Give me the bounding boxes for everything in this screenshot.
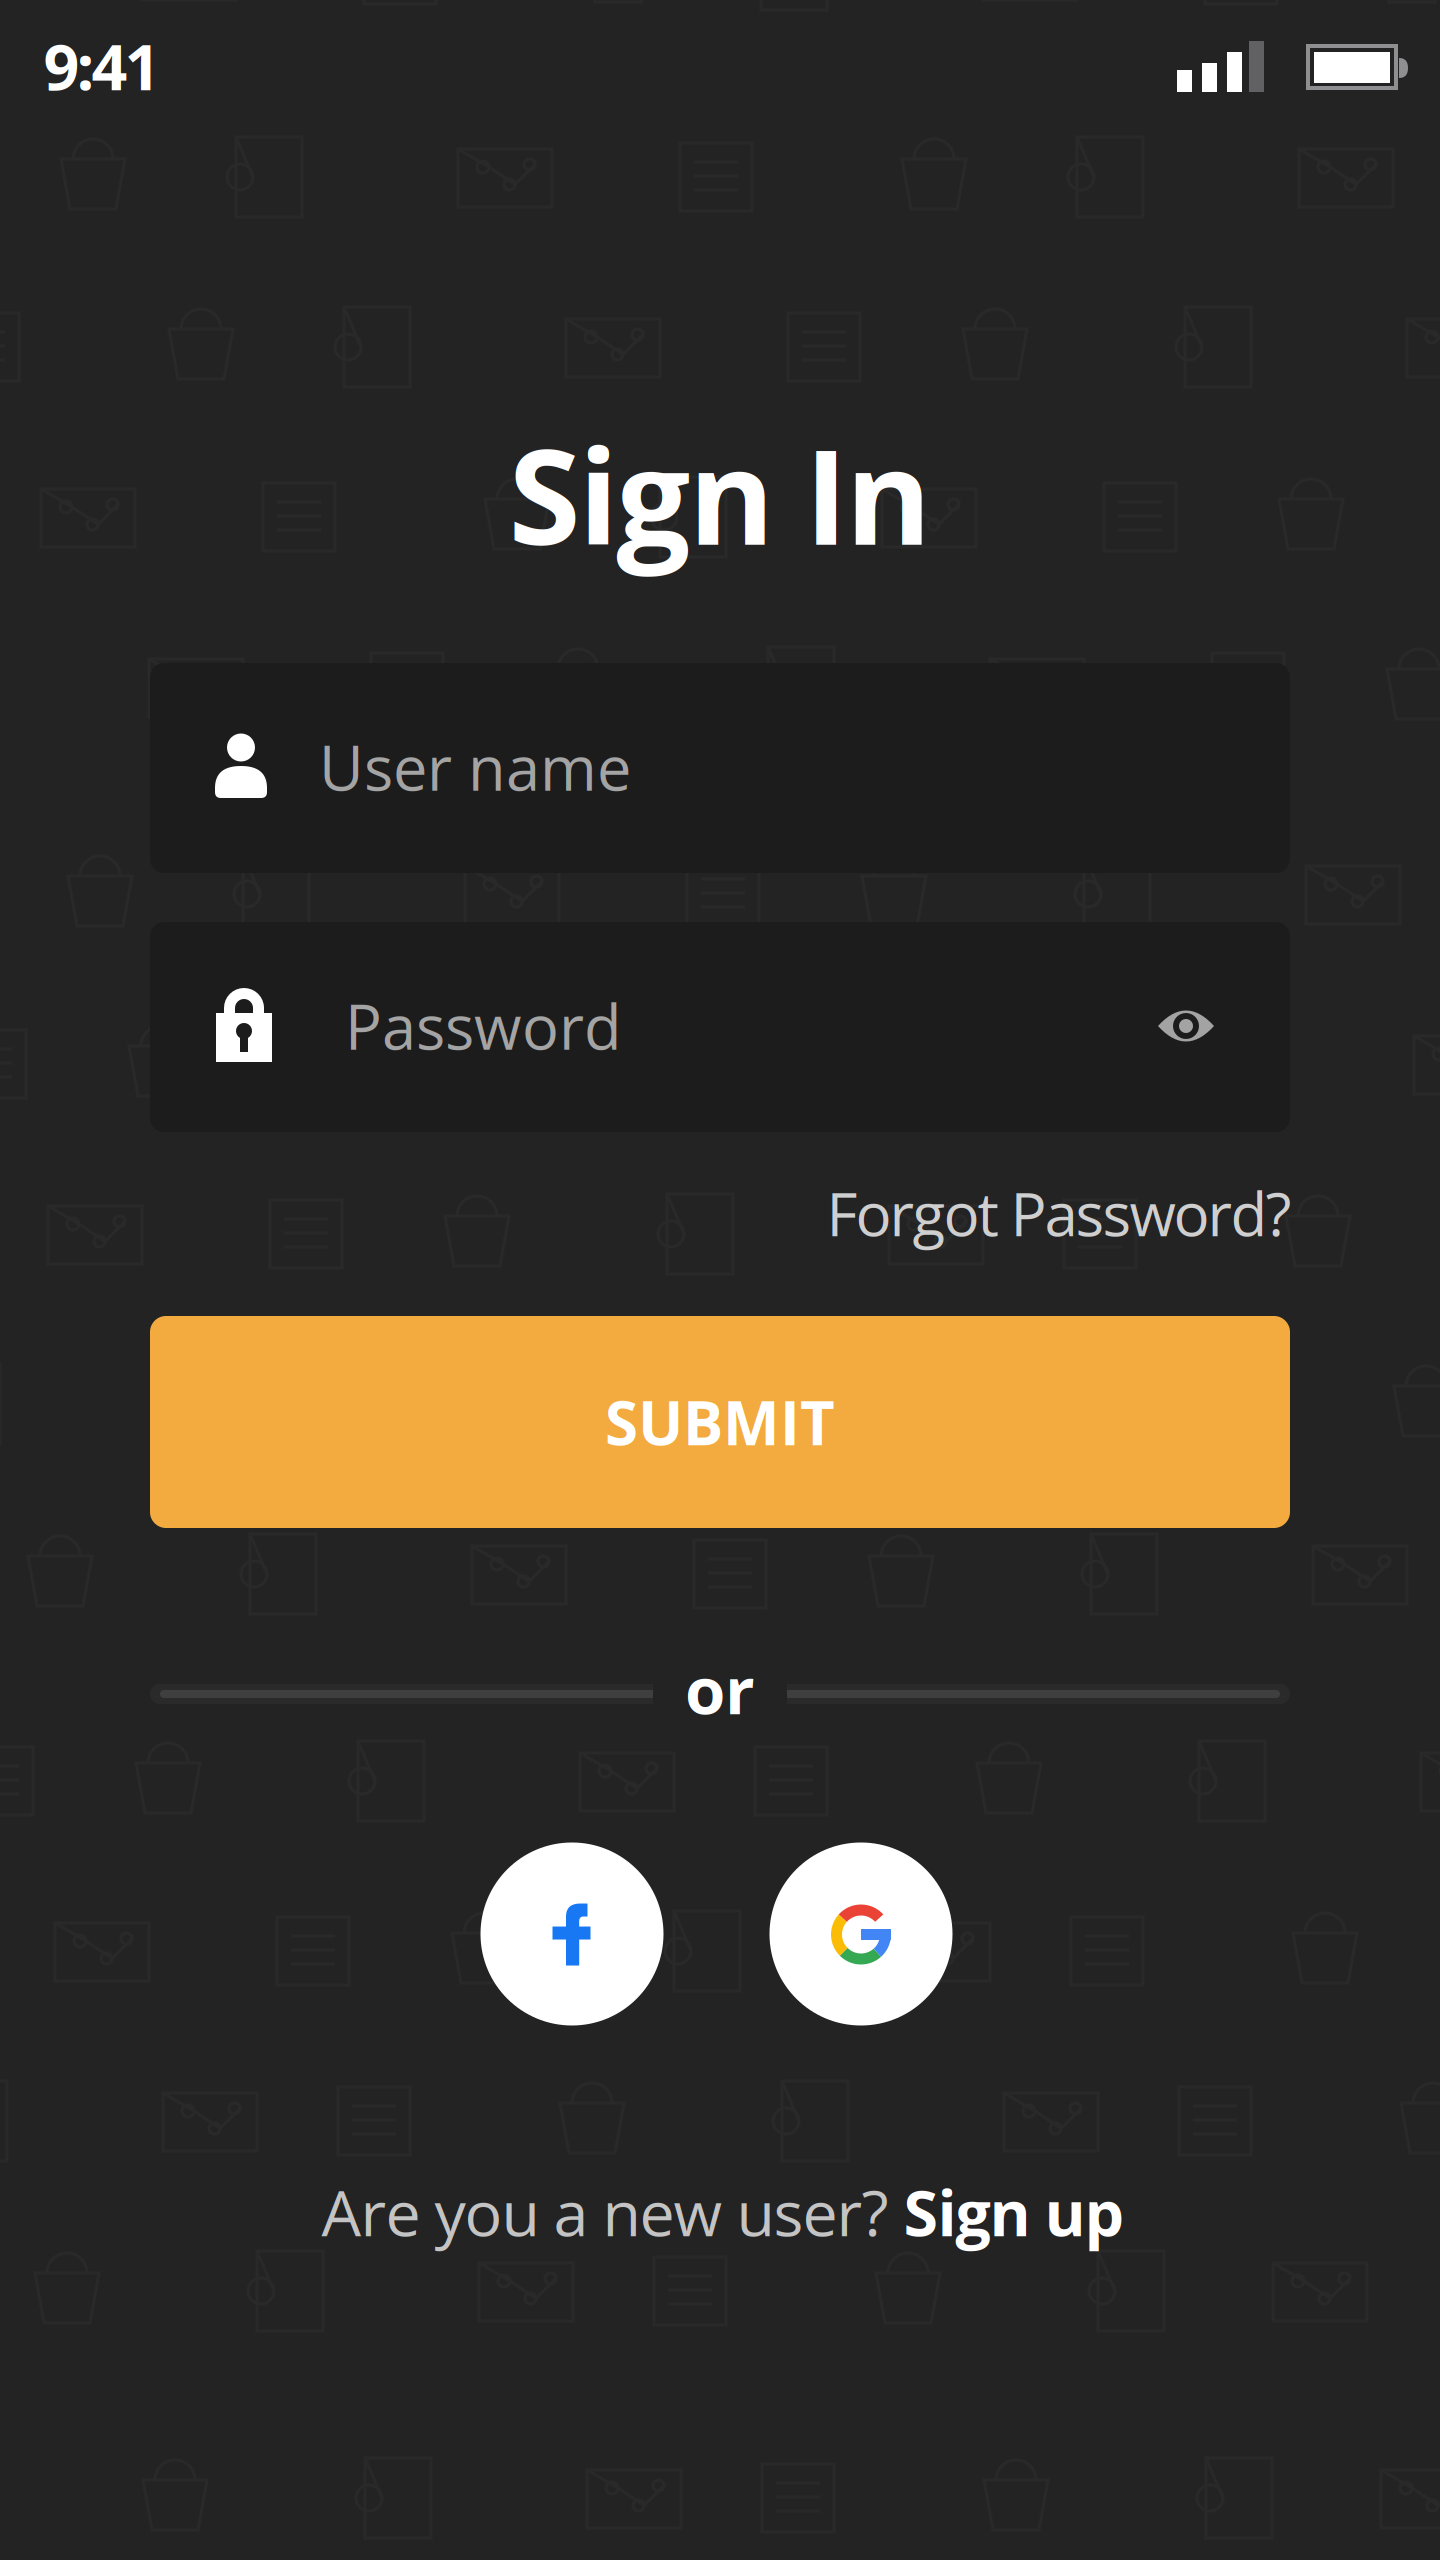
staticText: User name	[319, 725, 631, 809]
staticText: Forgot Password?	[826, 1172, 1291, 1254]
button[interactable]: Password	[150, 922, 1290, 1132]
staticText: Password	[345, 984, 622, 1068]
staticText: 9:41	[43, 23, 160, 109]
button[interactable]: Are you a new user?	[321, 2169, 1124, 2255]
staticText: Sign up	[903, 2169, 1124, 2255]
button[interactable]: Forgot Password?	[826, 1172, 1291, 1254]
button[interactable]: Show password	[1116, 922, 1256, 1130]
button[interactable]: Sign in with Google	[769, 1842, 952, 2025]
button[interactable]: SUBMIT	[150, 1316, 1290, 1528]
staticText: Sign In	[508, 405, 931, 583]
button[interactable]: Sign in with Facebook	[480, 1842, 663, 2025]
button[interactable]: User name	[150, 663, 1290, 873]
staticText: or	[685, 1644, 755, 1733]
staticText: Are you a new user?	[321, 2169, 903, 2255]
staticText: SUBMIT	[605, 1381, 835, 1463]
